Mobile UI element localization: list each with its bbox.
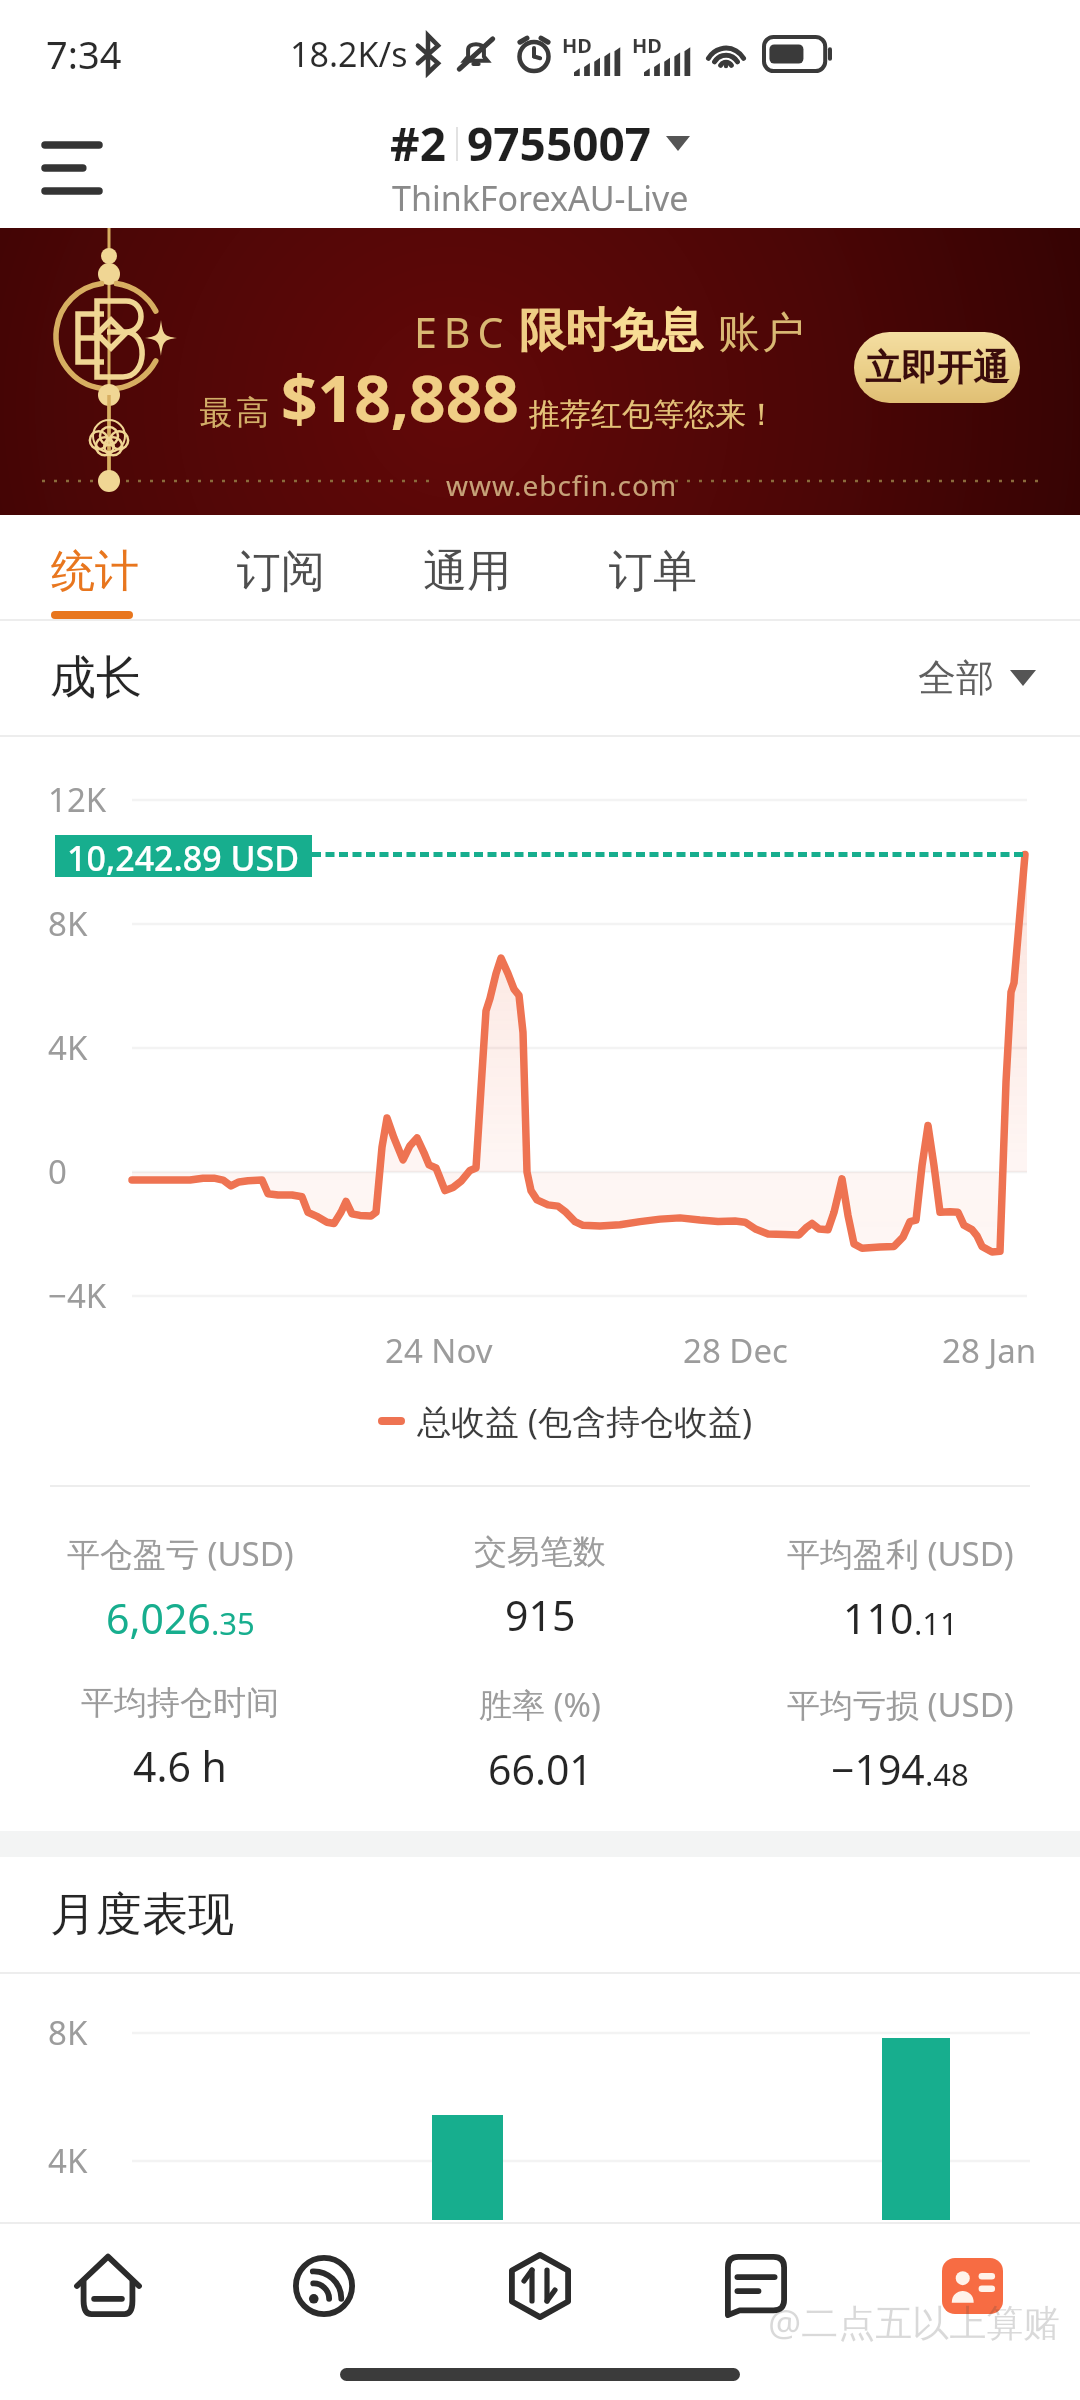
staticText: ThinkForexAU-Live <box>392 175 689 221</box>
staticText: .35 <box>211 1602 255 1644</box>
staticText: 成长 <box>50 649 142 707</box>
staticText: 订阅 <box>237 544 325 599</box>
staticText: 限时 <box>519 302 611 360</box>
staticText: 110 <box>843 1590 914 1646</box>
staticText: 7:34 <box>46 28 122 80</box>
staticText: .11 <box>914 1602 958 1644</box>
staticText: HD <box>562 32 592 59</box>
staticText: 6,026 <box>106 1590 211 1646</box>
button[interactable]: 订阅 <box>186 515 372 619</box>
button[interactable]: Signals <box>216 2224 432 2348</box>
staticText: HD <box>632 32 662 59</box>
staticText: −194 <box>831 1741 925 1797</box>
staticText: 4K <box>48 2138 88 2183</box>
staticText: 18.2K/s <box>290 31 408 77</box>
staticText: 24 Nov <box>385 1328 493 1373</box>
staticText: 总收益 (包含持仓收益) <box>417 1398 753 1444</box>
staticText: www.ebcfin.com <box>446 466 678 504</box>
staticText: 平仓盈亏 (USD) <box>67 1531 294 1576</box>
button[interactable]: 订单 <box>558 515 744 619</box>
staticText: 28 Dec <box>683 1328 788 1373</box>
button[interactable]: 通用 <box>372 515 558 619</box>
staticText: 4K <box>48 1025 88 1070</box>
staticText: 推荐红包等您来！ <box>529 395 777 434</box>
staticText: EBC <box>414 304 511 360</box>
button[interactable]: Profile <box>864 2224 1080 2348</box>
staticText: 最高 <box>197 392 271 434</box>
staticText: 平均持仓时间 <box>81 1682 279 1724</box>
staticText: 平均盈利 (USD) <box>787 1531 1014 1576</box>
staticText: 交易笔数 <box>474 1531 606 1573</box>
staticText: 立即开通 <box>865 345 1009 390</box>
staticText: 账户 <box>717 307 805 360</box>
staticText: 28 Jan <box>942 1328 1037 1373</box>
staticText: 915 <box>505 1587 576 1643</box>
staticText: 统计 <box>51 544 139 599</box>
button[interactable]: Home <box>0 2224 216 2348</box>
staticText: 9755007 <box>467 112 652 175</box>
button[interactable]: 统计 <box>0 515 186 619</box>
button[interactable]: Menu <box>6 108 138 228</box>
staticText: @二点五以上算赌 <box>768 2296 1061 2347</box>
staticText: −4K <box>48 1273 107 1318</box>
staticText: 免息 <box>611 302 703 360</box>
button[interactable]: 立即开通 <box>854 332 1020 403</box>
staticText: 4.6 h <box>133 1738 227 1794</box>
staticText: 订单 <box>609 544 697 599</box>
staticText: 10,242.89 USD <box>67 835 300 877</box>
staticText: .48 <box>925 1753 969 1795</box>
staticText: 平均亏损 (USD) <box>787 1682 1014 1727</box>
staticText: 66.01 <box>488 1741 593 1797</box>
staticText: $18,888 <box>281 354 519 441</box>
staticText: 8K <box>48 2010 88 2055</box>
staticText: 12K <box>48 777 107 822</box>
staticText: 通用 <box>423 544 511 599</box>
staticText: 全部 <box>918 654 994 702</box>
staticText: 胜率 (%) <box>479 1682 601 1727</box>
button[interactable]: Chat <box>648 2224 864 2348</box>
staticText: 月度表现 <box>50 1886 234 1944</box>
button[interactable]: 全部 <box>918 654 1036 702</box>
button[interactable]: Trade <box>432 2224 648 2348</box>
staticText: 0 <box>48 1149 67 1194</box>
staticText: 8K <box>48 901 88 946</box>
staticText: #2 <box>390 112 447 175</box>
